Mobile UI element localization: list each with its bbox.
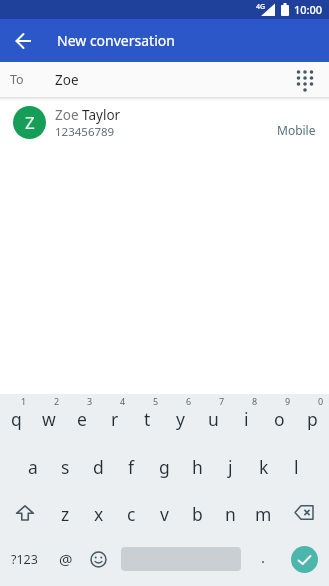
button[interactable]: m (247, 489, 280, 536)
button[interactable]: z (49, 489, 82, 536)
button[interactable] (115, 536, 247, 586)
staticText: 4 (120, 395, 126, 407)
staticText: Mobile (277, 122, 316, 138)
button[interactable]: o (263, 394, 296, 442)
staticText: a (28, 455, 38, 479)
staticText: Z (25, 111, 35, 134)
button[interactable] (0, 489, 49, 536)
staticText: m (255, 502, 272, 526)
button[interactable] (82, 536, 115, 586)
button[interactable] (285, 62, 325, 97)
button[interactable]: f (115, 442, 148, 489)
staticText: h (192, 455, 203, 479)
button[interactable]: c (115, 489, 148, 536)
staticText: 8 (252, 395, 258, 407)
button[interactable]: d (82, 442, 115, 489)
button[interactable] (280, 489, 329, 536)
staticText: . (261, 547, 266, 567)
button[interactable]: s (49, 442, 82, 489)
button[interactable]: e (65, 394, 98, 442)
button[interactable]: . (247, 536, 280, 586)
button[interactable]: p (296, 394, 329, 442)
staticText: n (225, 502, 236, 526)
button[interactable]: q (0, 394, 32, 442)
button[interactable]: b (181, 489, 214, 536)
button[interactable]: i (230, 394, 263, 442)
button[interactable]: l (280, 442, 313, 489)
staticText: 123456789 (55, 124, 115, 140)
button[interactable]: v (148, 489, 181, 536)
staticText: 9 (285, 395, 291, 407)
button[interactable] (280, 536, 329, 586)
staticText: f (128, 455, 135, 479)
staticText: b (192, 502, 203, 526)
staticText: To (10, 71, 24, 88)
staticText: 0 (318, 395, 324, 407)
staticText: ?123 (11, 551, 38, 568)
button[interactable]: g (148, 442, 181, 489)
staticText: t (144, 407, 151, 431)
staticText: i (244, 407, 249, 431)
staticText: k (259, 455, 269, 479)
button[interactable]: h (181, 442, 214, 489)
staticText: 6 (186, 395, 192, 407)
staticText: v (160, 502, 169, 526)
staticText: y (176, 407, 185, 431)
staticText: @ (59, 549, 73, 569)
staticText: l (294, 455, 299, 479)
staticText: c (127, 502, 136, 526)
staticText: 7 (219, 395, 225, 407)
staticText: z (61, 502, 70, 526)
staticText: e (77, 407, 87, 431)
staticText: w (42, 407, 56, 431)
staticText: x (94, 502, 104, 526)
staticText: o (274, 407, 285, 431)
staticText: 2 (54, 395, 60, 407)
staticText: 4G (256, 2, 266, 12)
staticText: 1 (21, 395, 27, 407)
button[interactable]: u (197, 394, 230, 442)
button[interactable]: j (214, 442, 247, 489)
button[interactable]: k (247, 442, 280, 489)
button[interactable]: a (16, 442, 49, 489)
staticText: q (11, 407, 22, 431)
staticText: 5 (153, 395, 159, 407)
staticText: Zoe (55, 71, 79, 89)
button[interactable]: w (32, 394, 65, 442)
staticText: s (61, 455, 70, 479)
staticText: u (208, 407, 219, 431)
staticText: 10:00 (294, 2, 323, 17)
button[interactable] (0, 19, 48, 62)
staticText: p (307, 407, 318, 431)
button[interactable]: r (98, 394, 131, 442)
button[interactable]: Z (0, 101, 329, 144)
staticText: g (159, 455, 170, 479)
staticText: 3 (87, 395, 93, 407)
button[interactable]: t (131, 394, 164, 442)
button[interactable]: x (82, 489, 115, 536)
staticText: r (111, 407, 119, 431)
staticText: d (93, 455, 104, 479)
button[interactable]: y (164, 394, 197, 442)
staticText: Zoe Taylor (55, 106, 121, 124)
button[interactable]: ?123 (0, 536, 49, 586)
staticText: New conversation (57, 31, 175, 50)
staticText: j (228, 455, 233, 479)
button[interactable]: @ (49, 536, 82, 586)
button[interactable]: n (214, 489, 247, 536)
